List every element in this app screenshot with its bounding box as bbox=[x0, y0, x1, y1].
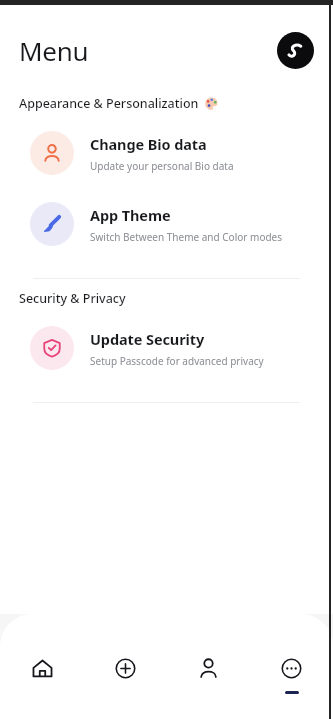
staticText: Security & Privacy bbox=[19, 290, 126, 307]
staticText: Update your personal Bio data bbox=[90, 159, 234, 173]
staticText: Update Security bbox=[90, 329, 205, 349]
button[interactable]: More bbox=[250, 658, 333, 719]
button[interactable]: Profile bbox=[277, 32, 314, 69]
button[interactable]: Home bbox=[0, 658, 84, 719]
staticText: Menu bbox=[19, 33, 89, 68]
button[interactable]: Update Security bbox=[0, 321, 333, 375]
staticText: Setup Passcode for advanced privacy bbox=[90, 354, 264, 368]
staticText: Change Bio data bbox=[90, 134, 207, 154]
button[interactable]: Account bbox=[167, 658, 250, 719]
button[interactable]: Change Bio data bbox=[0, 126, 333, 180]
staticText: Appearance & Personalization bbox=[19, 95, 199, 112]
button[interactable]: Add bbox=[84, 658, 167, 719]
staticText: Switch Between Theme and Color modes bbox=[90, 230, 283, 244]
button[interactable]: App Theme bbox=[0, 197, 333, 251]
staticText: App Theme bbox=[90, 205, 171, 225]
